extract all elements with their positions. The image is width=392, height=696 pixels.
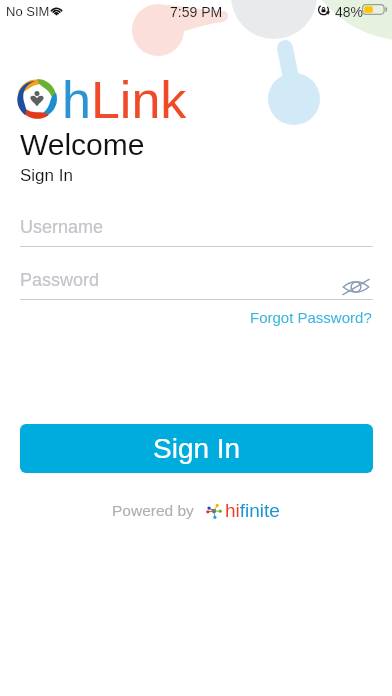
staticText: Sign In	[20, 166, 73, 185]
button[interactable]: Forgot Password?	[250, 309, 372, 326]
staticText: Sign In	[153, 433, 241, 464]
staticText: Forgot Password?	[250, 309, 372, 326]
staticText: Username	[20, 217, 104, 237]
button[interactable]: Show password	[338, 269, 374, 305]
staticText: 48%	[335, 4, 364, 20]
staticText: Password	[20, 270, 100, 290]
staticText: hLink	[62, 71, 187, 129]
staticText: hifinite	[225, 500, 280, 521]
button[interactable]: Sign In	[20, 424, 373, 473]
staticText: No SIM	[6, 4, 50, 19]
staticText: Welcome	[20, 128, 145, 162]
staticText: Powered by	[112, 502, 194, 519]
staticText: 7:59 PM	[170, 4, 223, 20]
